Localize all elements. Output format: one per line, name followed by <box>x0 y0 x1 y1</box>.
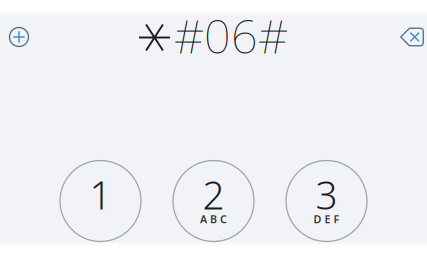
staticText: A B C <box>200 212 227 226</box>
staticText: #06# <box>174 4 288 66</box>
button[interactable]: 2 <box>173 160 254 241</box>
staticText: 1 <box>89 169 111 220</box>
button[interactable]: Delete <box>394 19 427 55</box>
staticText: 2 <box>202 169 224 220</box>
staticText: D E F <box>313 212 339 226</box>
button[interactable]: Add Number <box>1 19 37 55</box>
button[interactable]: 3 <box>286 160 367 241</box>
staticText: 3 <box>315 169 337 220</box>
button[interactable]: 1 <box>60 160 141 241</box>
